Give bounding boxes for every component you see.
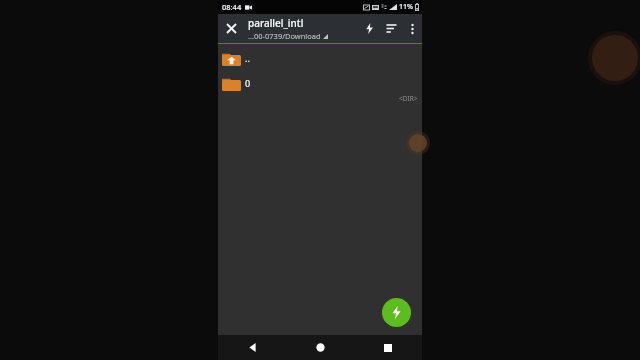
button[interactable]: parallel_intl: [248, 16, 358, 41]
staticText: <DIR>: [399, 94, 418, 103]
staticText: 11%: [399, 2, 413, 12]
button[interactable]: Recent apps: [354, 335, 422, 360]
staticText: ...00-0739/Download: [248, 31, 321, 41]
button[interactable]: ..: [218, 47, 422, 69]
button[interactable]: Home: [286, 335, 354, 360]
button[interactable]: 0: [218, 72, 422, 94]
staticText: 08:44: [222, 2, 242, 12]
button[interactable]: Extract: [382, 298, 411, 327]
button[interactable]: Close: [218, 14, 244, 43]
staticText: ..: [245, 52, 250, 64]
staticText: 0: [245, 77, 251, 89]
button[interactable]: Extract: [358, 14, 380, 43]
staticText: parallel_intl: [248, 16, 304, 30]
button[interactable]: Sort: [380, 14, 402, 43]
button[interactable]: More options: [402, 14, 422, 43]
button[interactable]: Back: [218, 335, 286, 360]
